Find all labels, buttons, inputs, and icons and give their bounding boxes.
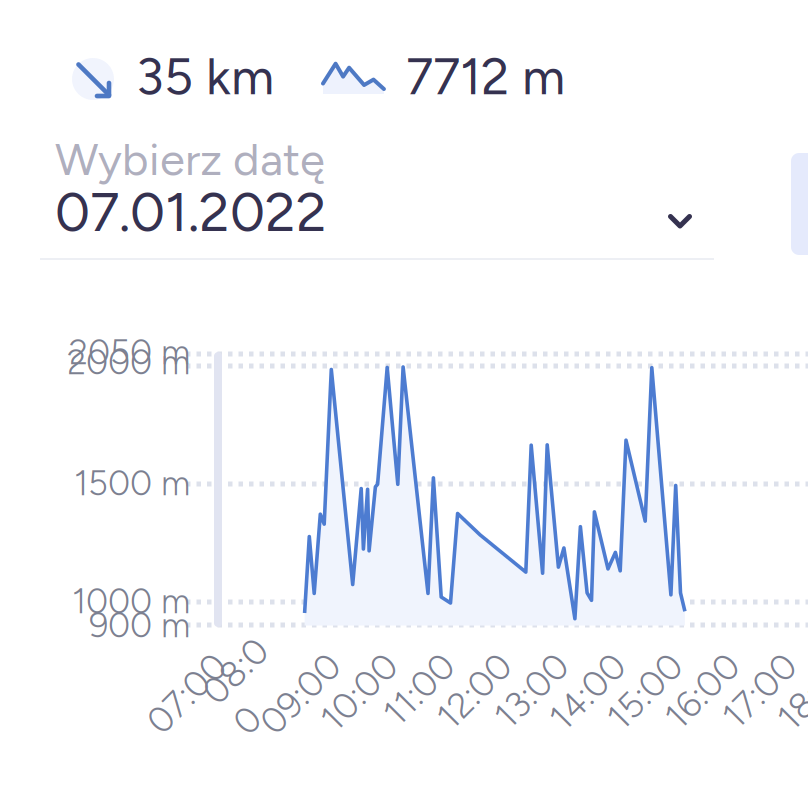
staticText: 2050 m (69, 331, 190, 373)
staticText: 15:00 (601, 672, 691, 716)
staticText: 07:00 (139, 672, 235, 716)
staticText: 09:00 (252, 672, 349, 716)
staticText: 14:00 (543, 672, 634, 716)
staticText: 18:00 (771, 672, 808, 716)
staticText: 900 m (89, 604, 190, 646)
staticText: Wybierz datę (55, 132, 325, 186)
staticText: 1500 m (74, 462, 190, 504)
staticText: 07.01.2022 (55, 179, 327, 245)
staticText: 11:00 (379, 672, 463, 716)
staticText: 1000 m (72, 580, 190, 622)
staticText: 2000 m (67, 341, 190, 383)
staticText: 13:00 (489, 672, 577, 716)
staticText: 17:00 (717, 672, 805, 716)
staticText: 10:00 (314, 672, 406, 716)
button[interactable]: Wybierz datę (40, 130, 714, 260)
staticText: 12:00 (431, 672, 520, 716)
staticText: 7712 m (406, 46, 565, 107)
staticText: 16:00 (659, 672, 748, 716)
staticText: 08:00 (216, 651, 292, 737)
staticText: 35 km (136, 46, 274, 107)
